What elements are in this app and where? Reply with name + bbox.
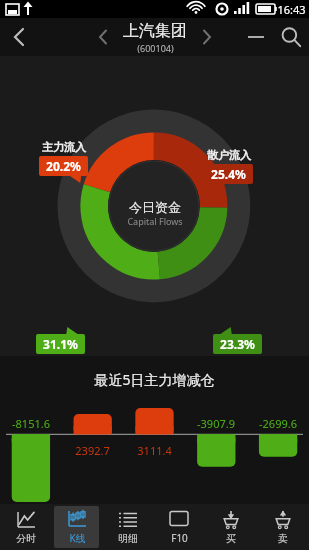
- staticText: 上汽集团: [123, 21, 187, 41]
- staticText: 31.1%: [43, 336, 78, 352]
- button[interactable]: 31.1%: [36, 334, 85, 370]
- button[interactable]: 分时: [3, 506, 48, 548]
- button[interactable]: Previous stock: [88, 22, 118, 52]
- staticText: 23.3%: [220, 336, 255, 352]
- button[interactable]: K线: [54, 506, 99, 548]
- staticText: (600104): [137, 42, 174, 54]
- staticText: 明细: [118, 532, 138, 545]
- button[interactable]: Back: [0, 18, 38, 56]
- staticText: 2392.7: [75, 443, 110, 458]
- staticText: 卖: [278, 532, 288, 545]
- staticText: F10: [171, 531, 188, 545]
- button[interactable]: 主力流入: [39, 140, 88, 176]
- button[interactable]: Next stock: [192, 22, 222, 52]
- staticText: 分时: [16, 532, 36, 545]
- button[interactable]: 上汽集团: [123, 21, 187, 54]
- button[interactable]: Minimize: [239, 20, 273, 54]
- button[interactable]: 23.3%: [213, 334, 262, 370]
- button[interactable]: 散户流入: [204, 148, 253, 184]
- staticText: 25.4%: [211, 166, 246, 182]
- button[interactable]: 卖: [260, 506, 306, 548]
- staticText: -2699.6: [259, 416, 297, 431]
- staticText: 最近5日主力增减仓: [94, 370, 215, 389]
- staticText: 主力流入: [42, 140, 86, 154]
- staticText: -3907.9: [197, 416, 235, 431]
- staticText: 20.2%: [46, 158, 81, 174]
- staticText: -8151.6: [12, 416, 50, 431]
- staticText: 16:43: [277, 2, 306, 17]
- staticText: Capital Flows: [127, 215, 183, 227]
- staticText: K线: [69, 531, 86, 545]
- staticText: 今日资金: [129, 199, 181, 215]
- button[interactable]: Search: [273, 19, 309, 55]
- staticText: 买: [226, 532, 236, 545]
- button[interactable]: F10: [156, 506, 202, 548]
- button[interactable]: 买: [208, 506, 254, 548]
- staticText: 3111.4: [137, 443, 172, 458]
- staticText: 散户流入: [207, 148, 251, 162]
- button[interactable]: 明细: [105, 506, 150, 548]
